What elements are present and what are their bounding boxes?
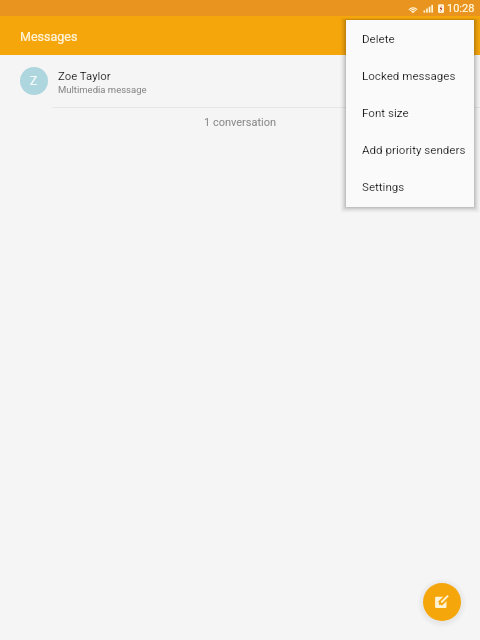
staticText: Font size (362, 106, 409, 120)
staticText: Settings (362, 180, 405, 194)
button[interactable]: Delete (346, 20, 474, 57)
staticText: Multimedia message (58, 84, 147, 95)
staticText: Zoe Taylor (58, 69, 111, 82)
button[interactable]: Compose new message (423, 583, 461, 621)
staticText: Locked messages (362, 69, 456, 83)
button[interactable]: Settings (346, 168, 474, 205)
staticText: 1 conversation (204, 116, 277, 129)
button[interactable]: Locked messages (346, 57, 474, 94)
staticText: Add priority senders (362, 143, 466, 157)
staticText: Delete (362, 32, 395, 46)
button[interactable]: Z (0, 55, 480, 107)
staticText: Z (30, 74, 38, 88)
button[interactable]: Messages (0, 16, 480, 55)
staticText: Messages (20, 29, 78, 44)
button[interactable]: Font size (346, 94, 474, 131)
button[interactable]: Add priority senders (346, 131, 474, 168)
staticText: 10:28 (447, 2, 475, 15)
